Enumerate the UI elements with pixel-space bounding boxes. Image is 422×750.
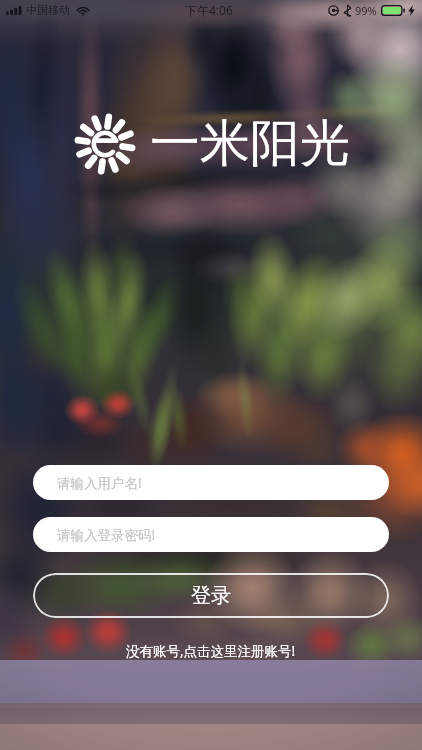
staticText: 请输入登录密码! <box>57 526 156 544</box>
staticText: 中国移动 <box>26 3 70 17</box>
staticText: 下午4:06 <box>185 2 233 18</box>
button[interactable]: 请输入用户名! <box>33 465 389 500</box>
staticText: 99% <box>355 3 377 18</box>
staticText: 一米阳光 <box>150 112 350 175</box>
staticText: 请输入用户名! <box>57 474 142 492</box>
button[interactable]: 登录 <box>33 573 389 618</box>
button[interactable]: 没有账号,点击这里注册账号! <box>126 642 296 660</box>
button[interactable]: 请输入登录密码! <box>33 517 389 552</box>
staticText: 登录 <box>191 583 231 608</box>
